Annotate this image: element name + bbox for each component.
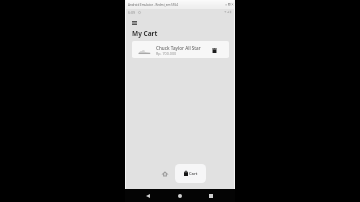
button[interactable]: Home xyxy=(175,191,184,200)
button[interactable]: Recent apps xyxy=(206,191,215,200)
button[interactable]: Chuck Taylor All Star xyxy=(132,41,229,58)
staticText: Cart xyxy=(189,171,198,176)
button[interactable]: Back xyxy=(143,191,152,200)
staticText: Android Emulator - Redmi_em:5554 xyxy=(128,3,178,7)
staticText: Rp. 700.000 xyxy=(156,51,177,56)
button[interactable]: Home xyxy=(160,169,170,179)
staticText: 6:09 xyxy=(128,10,136,15)
button[interactable]: Delete item xyxy=(210,46,219,55)
button[interactable]: Menu xyxy=(130,19,139,26)
button[interactable]: Cart xyxy=(175,164,206,183)
staticText: Chuck Taylor All Star xyxy=(156,45,201,51)
staticText: My Cart xyxy=(132,29,158,38)
